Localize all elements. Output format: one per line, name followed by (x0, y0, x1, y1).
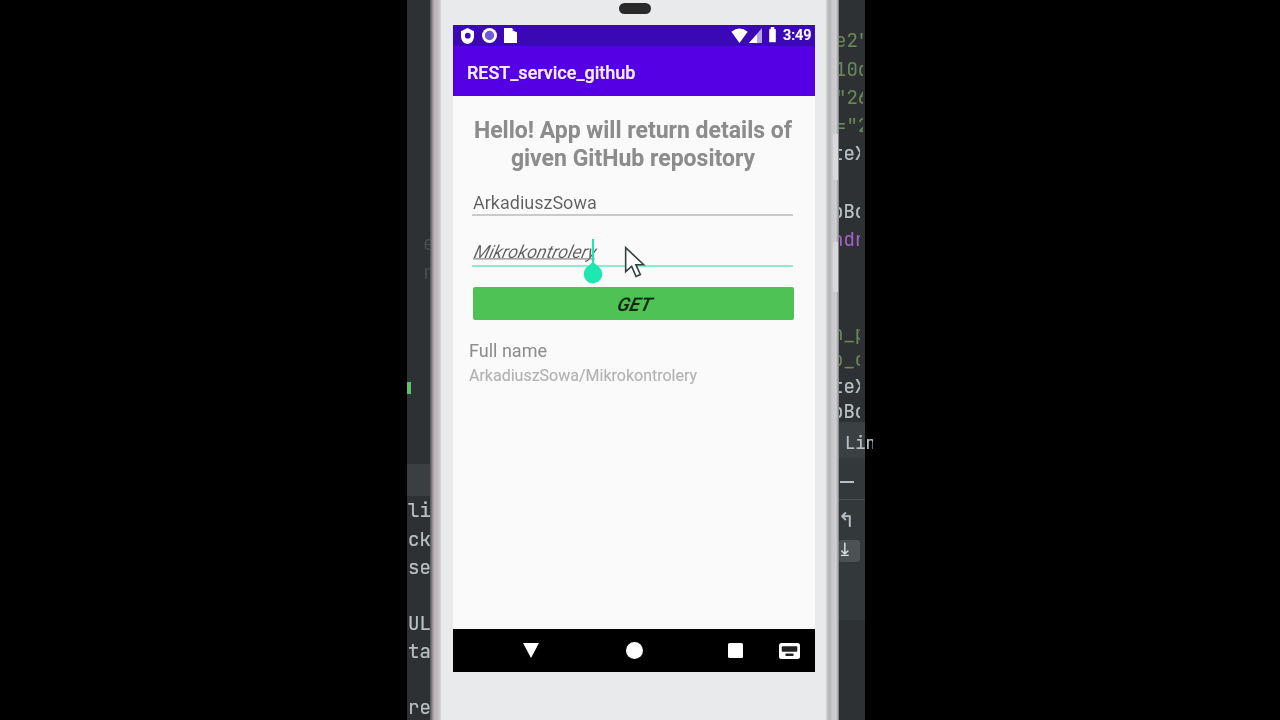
button[interactable]: Home (618, 629, 650, 672)
button[interactable]: Back (515, 629, 547, 672)
staticText: Full name (469, 340, 547, 361)
button[interactable]: GET (473, 287, 794, 320)
button[interactable]: Recent apps (719, 629, 751, 672)
staticText: ↰ (838, 508, 855, 531)
staticText: ndr (832, 227, 860, 252)
staticText: e r (423, 231, 435, 285)
staticText: oBo (832, 199, 860, 224)
staticText: GET (616, 293, 651, 315)
staticText: Lin (845, 432, 873, 454)
staticText: ⤓ (841, 541, 849, 559)
staticText: li ck se UL ta re (408, 498, 431, 720)
staticText: teX oBo (832, 374, 860, 423)
staticText: Hello! App will return details of given … (469, 117, 797, 172)
staticText: ArkadiuszSowa/Mikrokontrolery (469, 366, 698, 385)
staticText: teX (832, 141, 860, 166)
button[interactable]: Keyboard (773, 629, 805, 672)
staticText: Mikrokontrolery (473, 241, 595, 262)
staticText: REST_service_github (467, 62, 636, 83)
staticText: 3:49 (783, 27, 812, 44)
staticText: ArkadiuszSowa (473, 192, 597, 213)
staticText: e2" 10d "26 ="2 (835, 28, 863, 138)
staticText: n_p p_c (832, 321, 860, 372)
